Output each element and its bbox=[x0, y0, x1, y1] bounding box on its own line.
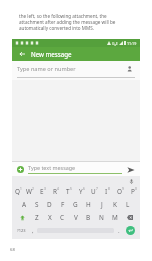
staticText: C bbox=[60, 213, 65, 222]
staticText: D bbox=[47, 200, 52, 209]
staticText: W bbox=[26, 187, 32, 196]
button[interactable]: P bbox=[127, 185, 140, 198]
button[interactable]: X bbox=[43, 211, 56, 224]
staticText: U bbox=[91, 187, 96, 196]
staticText: 2 bbox=[32, 187, 34, 191]
staticText: 11:19 bbox=[127, 41, 137, 46]
button[interactable]: Comma bbox=[28, 224, 37, 237]
button[interactable]: M bbox=[108, 211, 121, 224]
staticText: 1 bbox=[20, 187, 22, 191]
staticText: T bbox=[66, 187, 70, 196]
button[interactable]: Backspace bbox=[121, 211, 138, 224]
button[interactable]: B bbox=[82, 211, 95, 224]
staticText: V bbox=[74, 213, 78, 222]
staticText: the left, so the following attachment, t… bbox=[19, 13, 107, 19]
staticText: M bbox=[112, 213, 118, 222]
button[interactable]: Send bbox=[125, 164, 136, 175]
button[interactable]: N bbox=[95, 211, 108, 224]
staticText: I bbox=[105, 187, 108, 196]
staticText: . bbox=[118, 227, 120, 235]
staticText: X bbox=[48, 213, 52, 222]
staticText: S bbox=[35, 200, 39, 209]
staticText: 7 bbox=[96, 187, 98, 191]
staticText: E bbox=[40, 187, 44, 196]
staticText: 0 bbox=[135, 187, 137, 191]
button[interactable]: F bbox=[56, 198, 69, 211]
button[interactable]: Shift bbox=[14, 211, 30, 224]
staticText: , bbox=[32, 227, 34, 235]
button[interactable]: J bbox=[95, 198, 108, 211]
button[interactable]: Z bbox=[30, 211, 43, 224]
staticText: 5 bbox=[70, 187, 72, 191]
button[interactable]: Q bbox=[12, 185, 24, 198]
button[interactable]: Back bbox=[17, 49, 27, 59]
button[interactable]: Voice input bbox=[127, 177, 135, 185]
staticText: ?123 bbox=[17, 228, 26, 233]
staticText: Y bbox=[79, 187, 83, 196]
staticText: Q bbox=[15, 187, 20, 196]
button[interactable]: S bbox=[30, 198, 43, 211]
staticText: 68 bbox=[10, 247, 15, 253]
button[interactable]: E bbox=[36, 185, 49, 198]
button[interactable]: K bbox=[108, 198, 121, 211]
staticText: New message bbox=[31, 50, 72, 58]
staticText: G₄E bbox=[112, 41, 118, 46]
staticText: A bbox=[22, 200, 27, 209]
staticText: 8 bbox=[108, 187, 110, 191]
button[interactable]: Add attachment bbox=[16, 165, 25, 174]
button[interactable]: O bbox=[114, 185, 127, 198]
button[interactable]: L bbox=[121, 198, 134, 211]
staticText: J bbox=[101, 200, 103, 209]
button[interactable]: Period bbox=[114, 224, 123, 237]
staticText: attachment after adding the message will… bbox=[19, 19, 116, 25]
button[interactable]: W bbox=[24, 185, 36, 198]
staticText: F bbox=[61, 200, 65, 209]
button[interactable]: D bbox=[43, 198, 56, 211]
staticText: 4 bbox=[57, 187, 59, 191]
button[interactable]: V bbox=[69, 211, 82, 224]
button[interactable]: G bbox=[69, 198, 82, 211]
staticText: automatically converted into MMS. bbox=[19, 25, 94, 31]
button[interactable]: C bbox=[56, 211, 69, 224]
staticText: Z bbox=[35, 213, 39, 222]
button[interactable]: Add contact bbox=[125, 64, 135, 74]
staticText: N bbox=[99, 213, 104, 222]
button[interactable]: Enter bbox=[123, 224, 137, 237]
staticText: 6 bbox=[83, 187, 85, 191]
staticText: B bbox=[86, 213, 91, 222]
staticText: Type text message bbox=[28, 164, 76, 171]
button[interactable]: Y bbox=[75, 185, 88, 198]
staticText: L bbox=[126, 200, 130, 209]
button[interactable]: H bbox=[82, 198, 95, 211]
button[interactable]: ?123 bbox=[15, 224, 28, 237]
staticText: R bbox=[53, 187, 57, 196]
button[interactable]: I bbox=[101, 185, 114, 198]
staticText: 3 bbox=[44, 187, 46, 191]
button[interactable]: A bbox=[18, 198, 30, 211]
staticText: P bbox=[131, 187, 135, 196]
staticText: 9 bbox=[122, 187, 124, 191]
staticText: H bbox=[86, 200, 91, 209]
button[interactable]: T bbox=[62, 185, 75, 198]
staticText: G bbox=[73, 200, 78, 209]
button[interactable]: R bbox=[49, 185, 62, 198]
staticText: Type name or number bbox=[17, 65, 76, 73]
button[interactable]: U bbox=[88, 185, 101, 198]
staticText: O bbox=[117, 187, 122, 196]
staticText: K bbox=[113, 200, 117, 209]
